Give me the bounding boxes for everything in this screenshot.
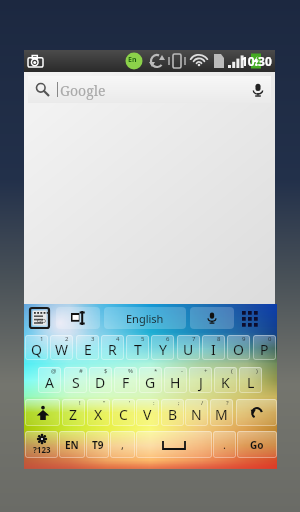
button[interactable]: H: [164, 367, 187, 393]
staticText: ,: [121, 437, 124, 452]
staticText: $: [104, 367, 108, 375]
staticText: ?: [226, 399, 229, 407]
button[interactable]: B: [161, 399, 184, 426]
staticText: M: [215, 405, 228, 424]
button[interactable]: .: [213, 431, 236, 458]
button[interactable]: Backspace: [236, 399, 277, 426]
button[interactable]: Shift: [25, 399, 60, 426]
staticText: ?123: [33, 444, 51, 455]
staticText: .: [223, 437, 226, 452]
staticText: ;: [178, 399, 180, 407]
button[interactable]: I: [202, 335, 225, 360]
staticText: :: [153, 399, 155, 407]
staticText: /: [201, 399, 204, 407]
button[interactable]: V: [136, 399, 159, 426]
button[interactable]: Space: [136, 431, 212, 458]
staticText: T9: [92, 438, 104, 452]
staticText: Google: [60, 81, 106, 100]
staticText: S: [72, 373, 80, 392]
staticText: B: [168, 405, 178, 424]
button[interactable]: Voice input: [190, 307, 234, 329]
staticText: En: [128, 55, 137, 65]
staticText: G: [145, 373, 156, 392]
button[interactable]: ,: [110, 431, 135, 458]
staticText: !: [79, 399, 81, 407]
staticText: ": [103, 399, 106, 407]
staticText: Go: [250, 438, 264, 452]
button[interactable]: S: [64, 367, 87, 393]
button[interactable]: O: [227, 335, 250, 360]
button[interactable]: J: [189, 367, 212, 393]
button[interactable]: Q: [25, 335, 48, 360]
button[interactable]: E: [76, 335, 99, 360]
staticText: 4: [116, 335, 120, 343]
staticText: 3: [91, 335, 95, 343]
button[interactable]: D: [89, 367, 112, 393]
button[interactable]: R: [101, 335, 124, 360]
staticText: U: [183, 340, 194, 359]
staticText: N: [191, 405, 202, 424]
staticText: GO: [37, 317, 47, 325]
staticText: 5: [141, 335, 145, 343]
button[interactable]: More keyboards: [242, 311, 260, 329]
staticText: 10:30: [241, 53, 272, 69]
staticText: K: [221, 373, 230, 392]
button[interactable]: T: [126, 335, 149, 360]
staticText: L: [247, 373, 255, 392]
button[interactable]: X: [87, 399, 110, 426]
staticText: V: [143, 405, 152, 424]
button[interactable]: N: [185, 399, 208, 426]
button[interactable]: L: [239, 367, 262, 393]
button[interactable]: P: [253, 335, 276, 360]
staticText: C: [119, 405, 128, 424]
staticText: O: [233, 340, 244, 359]
staticText: ): [256, 367, 258, 375]
staticText: EN: [65, 438, 79, 452]
button[interactable]: K: [214, 367, 237, 393]
staticText: *: [154, 367, 158, 375]
button[interactable]: Keyboard settings: [29, 307, 50, 329]
button[interactable]: English: [104, 307, 186, 329]
staticText: 0: [268, 335, 272, 343]
staticText: (: [231, 367, 233, 375]
button[interactable]: A: [38, 367, 61, 393]
button[interactable]: Input method: [56, 307, 100, 329]
staticText: 7: [192, 335, 196, 343]
staticText: P: [260, 340, 269, 359]
button[interactable]: Google: [28, 76, 271, 103]
staticText: I: [211, 340, 216, 359]
button[interactable]: EN: [59, 431, 85, 458]
staticText: +: [204, 367, 208, 375]
staticText: ': [129, 399, 131, 407]
staticText: D: [95, 373, 106, 392]
button[interactable]: Symbols: [25, 431, 58, 458]
staticText: E: [84, 340, 92, 359]
staticText: Z: [69, 405, 78, 424]
button[interactable]: Z: [62, 399, 85, 426]
staticText: T: [134, 340, 142, 359]
staticText: 6: [166, 335, 170, 343]
button[interactable]: Voice search: [244, 76, 271, 103]
button[interactable]: W: [50, 335, 73, 360]
staticText: Y: [159, 340, 167, 359]
staticText: 9: [242, 335, 246, 343]
staticText: @: [51, 367, 57, 375]
staticText: W: [55, 340, 69, 359]
button[interactable]: C: [112, 399, 135, 426]
button[interactable]: F: [114, 367, 137, 393]
button[interactable]: M: [210, 399, 233, 426]
button[interactable]: Y: [151, 335, 174, 360]
staticText: -: [181, 367, 183, 375]
staticText: 8: [217, 335, 221, 343]
button[interactable]: G: [139, 367, 162, 393]
staticText: %: [128, 367, 133, 375]
staticText: R: [108, 340, 117, 359]
staticText: A: [45, 373, 54, 392]
staticText: H: [170, 373, 181, 392]
staticText: J: [199, 373, 203, 392]
button[interactable]: T9: [86, 431, 109, 458]
button[interactable]: U: [177, 335, 200, 360]
button[interactable]: Go: [237, 431, 277, 458]
staticText: F: [122, 373, 130, 392]
staticText: #: [79, 367, 83, 375]
